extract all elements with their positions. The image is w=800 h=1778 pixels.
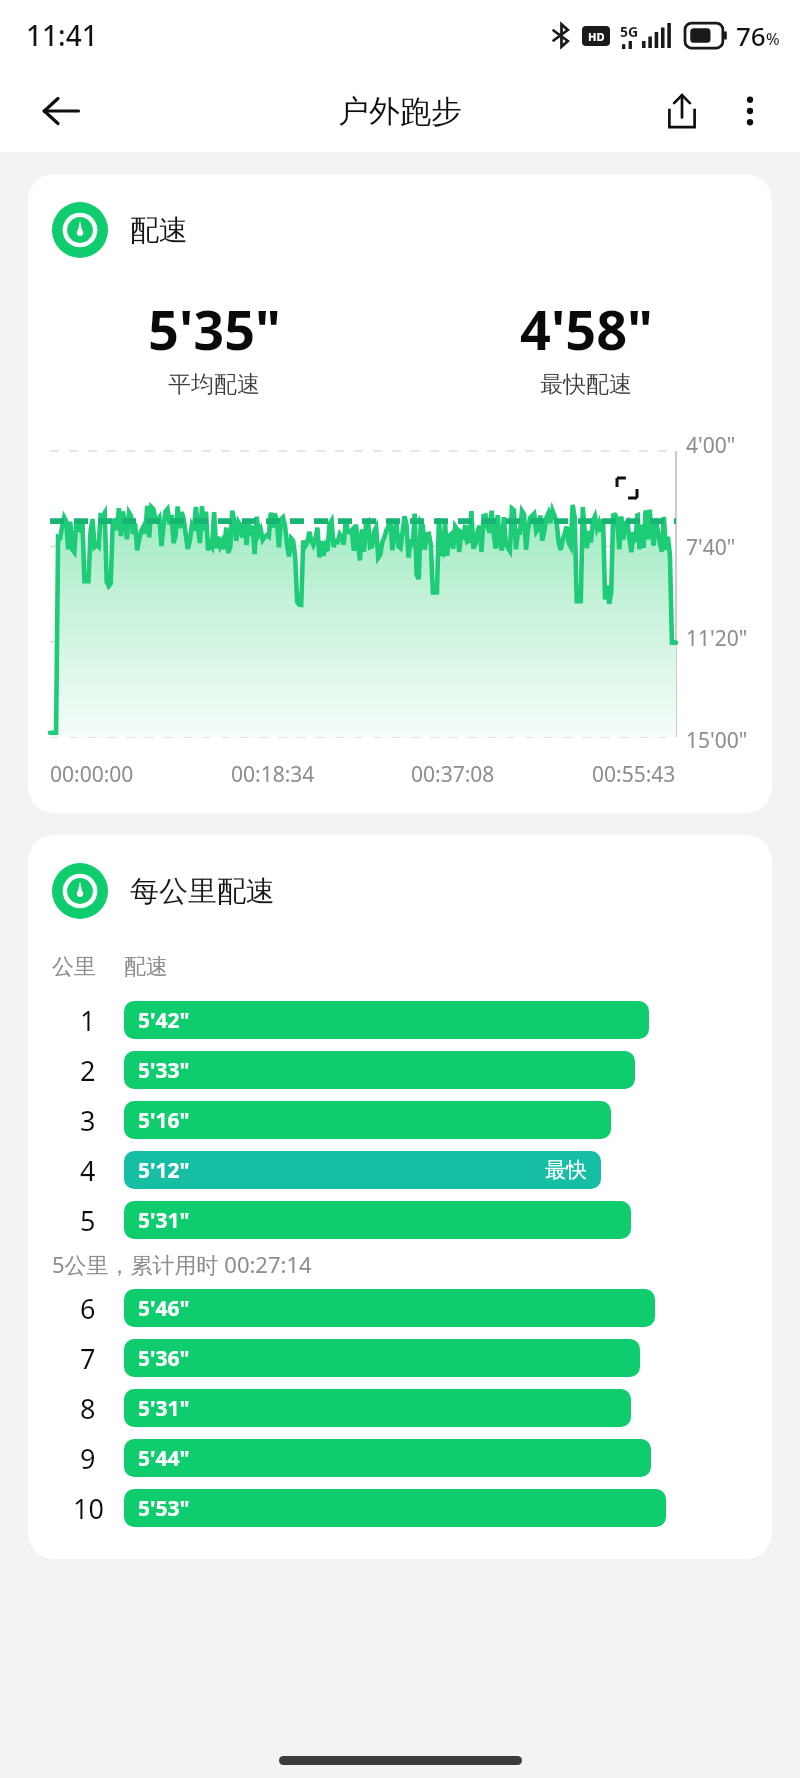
button[interactable]: 配速 — [28, 174, 772, 813]
staticText: 平均配速 — [168, 370, 260, 399]
staticText: 10 — [73, 1490, 104, 1527]
staticText: 5'46" — [138, 1294, 190, 1323]
staticText: 00:55:43 — [592, 760, 676, 789]
button[interactable]: 9 — [28, 1433, 772, 1483]
button[interactable]: Share — [648, 77, 716, 145]
button[interactable]: 10 — [28, 1483, 772, 1533]
button[interactable]: More options — [716, 77, 784, 145]
staticText: % — [766, 28, 780, 50]
staticText: 76 — [736, 18, 766, 53]
staticText: 5'31" — [138, 1206, 190, 1235]
button[interactable]: 8 — [28, 1383, 772, 1433]
staticText: 1 — [80, 1002, 96, 1039]
staticText: 5'42" — [138, 1006, 190, 1035]
staticText: 3 — [80, 1102, 96, 1139]
staticText: 00:37:08 — [411, 760, 495, 789]
button[interactable]: 2 — [28, 1045, 772, 1095]
staticText: 2 — [80, 1052, 96, 1089]
staticText: 4 — [80, 1152, 96, 1189]
staticText: 5'31" — [138, 1394, 190, 1423]
staticText: 6 — [80, 1290, 96, 1327]
staticText: 配速 — [124, 953, 168, 981]
staticText: 5'16" — [138, 1106, 190, 1135]
staticText: 配速 — [130, 212, 188, 249]
staticText: 15'00" — [686, 726, 748, 755]
button[interactable]: Expand chart — [600, 461, 654, 515]
staticText: 9 — [80, 1440, 96, 1477]
staticText: 5G — [620, 22, 639, 41]
button[interactable]: 1 — [28, 995, 772, 1045]
staticText: 4'58" — [520, 292, 653, 366]
staticText: 5'33" — [138, 1056, 190, 1085]
staticText: 7'40" — [686, 533, 736, 562]
staticText: 11:41 — [26, 16, 98, 54]
staticText: 4'00" — [686, 431, 736, 460]
staticText: 5'12" — [138, 1156, 190, 1185]
staticText: 8 — [80, 1390, 96, 1427]
button[interactable]: 5 — [28, 1195, 772, 1245]
staticText: 00:18:34 — [231, 760, 315, 789]
staticText: 5'53" — [138, 1494, 190, 1523]
button[interactable]: 每公里配速 — [28, 835, 772, 1559]
staticText: 5'44" — [138, 1444, 190, 1473]
staticText: 每公里配速 — [130, 873, 275, 910]
staticText: 5'35" — [148, 292, 281, 366]
button[interactable]: 7 — [28, 1333, 772, 1383]
staticText: 5'36" — [138, 1344, 190, 1373]
staticText: 5公里，累计用时 00:27:14 — [52, 1249, 312, 1279]
staticText: 公里 — [52, 953, 124, 981]
button[interactable]: 4 — [28, 1145, 772, 1195]
button[interactable]: Back — [28, 78, 94, 144]
staticText: HD — [588, 29, 605, 44]
staticText: 00:00:00 — [50, 760, 134, 789]
staticText: 最快 — [545, 1157, 587, 1183]
staticText: 最快配速 — [540, 370, 632, 399]
button[interactable]: 3 — [28, 1095, 772, 1145]
staticText: 户外跑步 — [338, 92, 462, 131]
staticText: 5 — [80, 1202, 96, 1239]
button[interactable]: 6 — [28, 1283, 772, 1333]
staticText: 7 — [80, 1340, 96, 1377]
staticText: 11'20" — [686, 624, 748, 653]
